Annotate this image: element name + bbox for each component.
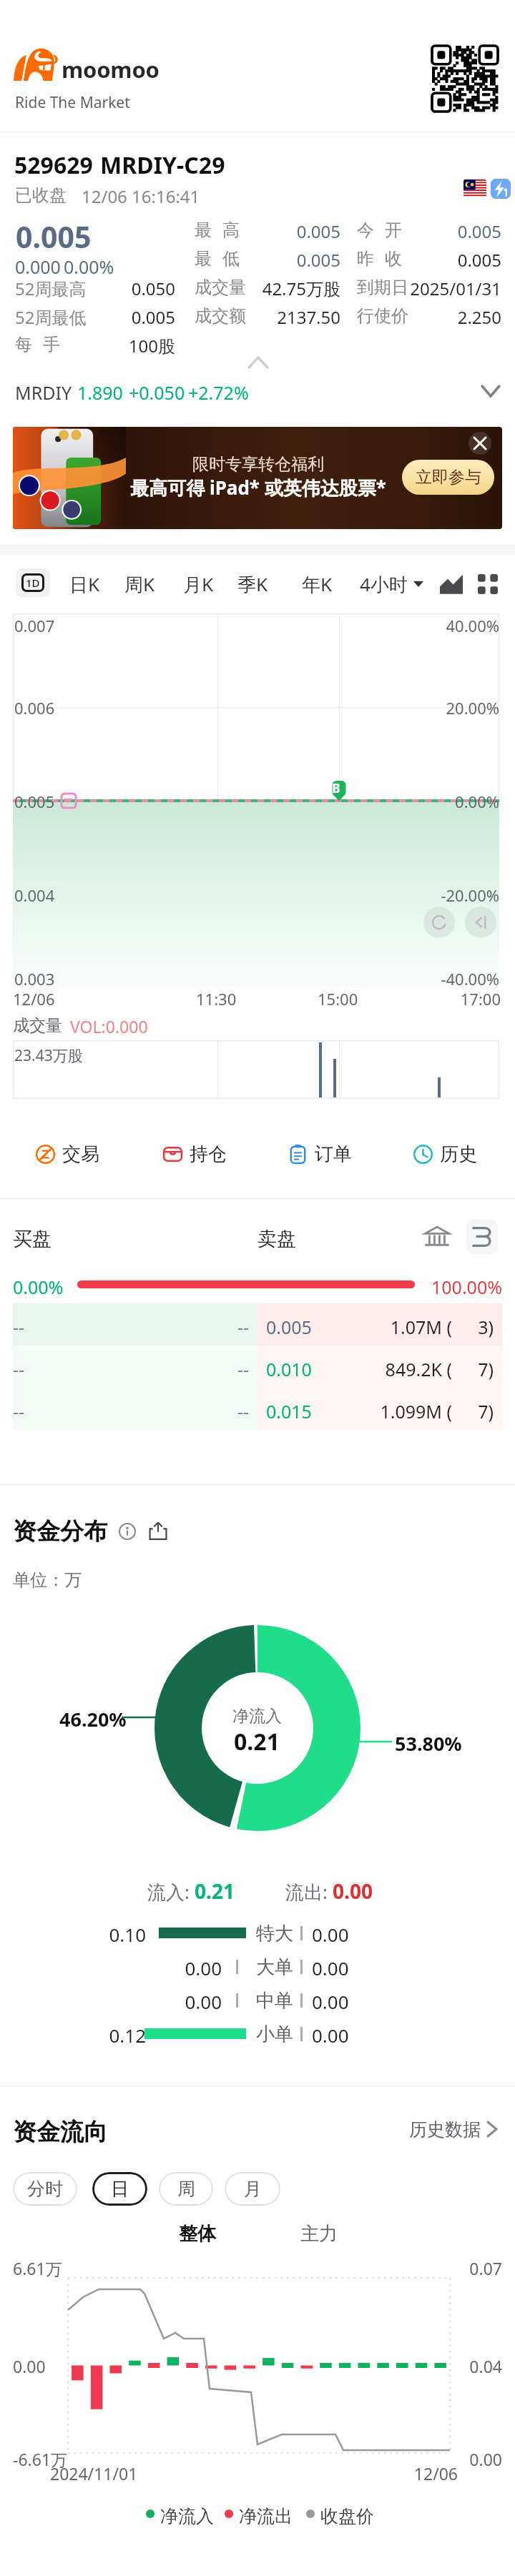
button[interactable]: 日K [66,568,103,600]
staticText: 主力 [300,2222,338,2246]
staticText: MRDIY [15,380,72,405]
staticText: 0.07 [469,2257,502,2279]
staticText: -6.61万 [13,2448,68,2470]
staticText: 12/06 16:16:41 [82,184,200,208]
staticText: 0.005 [296,219,340,243]
button[interactable]: -- [13,1346,257,1388]
staticText: 整体 [179,2222,216,2246]
button[interactable]: 季K [234,568,271,600]
staticText: 2025/01/31 [410,277,501,300]
staticText: 0.007 [14,615,55,636]
button[interactable]: 历史 [405,1135,488,1173]
staticText: Ride The Market [15,92,130,113]
button[interactable]: 4小时 [360,568,423,600]
button[interactable]: 订单 [280,1135,363,1173]
staticText: 4小时 [360,571,408,597]
staticText: 40.00% [446,615,499,636]
staticText: 1.099M ( [380,1399,452,1423]
staticText: 23.43万股 [14,1045,83,1066]
button[interactable]: 整体 [175,2221,220,2246]
staticText: -- [13,1399,25,1423]
staticText: 0.00 [312,1922,349,1947]
staticText: -40.00% [441,968,499,990]
button[interactable]: Share [149,1521,167,1540]
button[interactable]: -- [13,1388,257,1430]
button[interactable]: 交易 [27,1135,112,1173]
staticText: 100股 [128,334,175,357]
staticText: 0.010 [266,1357,312,1381]
staticText: 0.00 [185,1955,222,1980]
staticText: 订单 [315,1143,352,1166]
staticText: 0.005 [16,217,92,257]
staticText: 42.75万股 [262,277,340,300]
staticText: -- [237,1357,249,1381]
staticText: 0.00 [333,1877,373,1905]
staticText: 7) [478,1399,494,1423]
button[interactable]: Depth chart [466,1220,498,1254]
staticText: 成交量 [195,277,246,298]
staticText: 日K [69,571,100,597]
staticText: -- [13,1315,25,1339]
staticText: 大单 [256,1955,293,1979]
staticText: 周K [124,571,155,597]
button[interactable]: 0.010 [257,1346,502,1388]
staticText: 持仓 [190,1143,227,1166]
staticText: 15:00 [318,988,358,1010]
button[interactable]: Info [119,1523,136,1540]
staticText: 1.890 [77,380,123,405]
staticText: 0.00 [13,2355,46,2377]
button[interactable]: Expand [482,386,499,396]
staticText: 17:00 [460,988,501,1010]
staticText: -20.00% [441,884,499,906]
button[interactable]: 日 [92,2172,147,2206]
staticText: +2.72% [188,380,249,405]
button[interactable]: 月 [225,2172,280,2206]
button[interactable]: 周 [159,2172,213,2206]
button[interactable]: Indicators [478,574,498,594]
staticText: 买盘 [13,1227,51,1251]
staticText: 净流入 [160,2505,214,2527]
staticText: 0.005 [14,791,55,812]
staticText: 11:30 [196,988,237,1010]
staticText: 0.04 [469,2355,502,2377]
button[interactable]: 0.005 [257,1303,502,1346]
staticText: 0.015 [266,1399,312,1423]
button[interactable]: Zoom out [423,907,455,938]
button[interactable]: 分时 [13,2172,77,2206]
button[interactable]: 月K [180,568,217,600]
staticText: 0.00 [469,2448,502,2470]
button[interactable]: 1D [16,568,50,597]
staticText: 昨 [357,248,374,270]
staticText: 资金分布 [13,1516,107,1546]
staticText: 6.61万 [13,2257,62,2279]
staticText: 已收盘 [15,184,67,206]
staticText: 卖盘 [257,1227,296,1251]
staticText: 立即参与 [416,467,481,488]
staticText: 单位：万 [13,1569,82,1591]
staticText: 历史数据 [409,2118,481,2141]
button[interactable]: -- [13,1303,257,1346]
button[interactable]: 历史数据 [409,2115,496,2143]
staticText: 0.00 [312,1989,349,2014]
staticText: 手 [43,334,60,355]
staticText: 0.00% [13,1275,64,1299]
button[interactable]: 周K [121,568,158,600]
button[interactable]: 主力 [296,2221,342,2246]
button[interactable]: Jump to latest [465,907,496,938]
staticText: +0.050 [129,380,185,405]
button[interactable]: 立即参与 [402,460,494,495]
staticText: 0.00 [312,2023,349,2048]
staticText: 1D [26,576,40,590]
button[interactable]: Broker queue [423,1223,451,1249]
button[interactable]: Close ad [469,432,491,455]
button[interactable] [13,427,502,529]
button[interactable]: Chart style [440,573,463,595]
staticText: 0.006 [14,697,55,719]
staticText: 7) [478,1357,494,1381]
staticText: 0.10 [109,1922,146,1947]
button[interactable]: 持仓 [154,1135,237,1173]
staticText: 周 [177,2178,195,2200]
staticText: 52周最低 [15,305,87,329]
button[interactable]: 年K [298,568,335,600]
button[interactable]: 0.015 [257,1388,502,1430]
